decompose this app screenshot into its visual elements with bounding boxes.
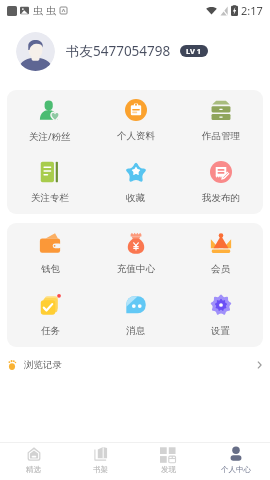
button[interactable]: 发现 [134, 443, 202, 480]
button[interactable]: 收藏 [93, 152, 178, 214]
button[interactable]: 钱包 [7, 223, 93, 285]
staticText: 发现 [161, 465, 176, 474]
staticText: 2:17 [241, 3, 263, 18]
button[interactable]: 关注/粉丝 [7, 90, 93, 152]
button[interactable]: 我发布的 [178, 152, 263, 214]
button[interactable]: 作品管理 [178, 90, 263, 152]
staticText: 浏览记录 [24, 359, 62, 371]
staticText: 任务 [41, 325, 60, 337]
button[interactable]: 充值中心 [93, 223, 178, 285]
staticText: 消息 [126, 325, 145, 337]
staticText: 关注/粉丝 [29, 130, 71, 143]
staticText: LV 1 [186, 46, 202, 56]
staticText: 收藏 [126, 192, 145, 204]
button[interactable]: 消息 [93, 285, 178, 347]
button[interactable]: 浏览记录 [0, 347, 270, 383]
staticText: 我发布的 [202, 192, 240, 204]
staticText: 书架 [93, 465, 108, 474]
staticText: 书友5477054798 [66, 42, 171, 60]
button[interactable]: 会员 [178, 223, 263, 285]
button[interactable]: 书友5477054798 [0, 20, 270, 82]
staticText: 个人中心 [221, 465, 251, 474]
staticText: 会员 [211, 263, 230, 275]
staticText: 关注专栏 [31, 192, 69, 204]
button[interactable]: 精选 [0, 443, 67, 480]
staticText: 设置 [211, 325, 230, 337]
staticText: 虫 [33, 4, 43, 17]
staticText: 钱包 [41, 263, 60, 275]
button[interactable]: 个人中心 [202, 443, 270, 480]
button[interactable]: 任务 [7, 285, 93, 347]
staticText: 充值中心 [117, 263, 155, 275]
staticText: 作品管理 [202, 130, 240, 142]
button[interactable]: 关注专栏 [7, 152, 93, 214]
button[interactable]: 书架 [67, 443, 134, 480]
staticText: 精选 [26, 465, 41, 474]
staticText: 虫 [46, 4, 56, 17]
staticText: 个人资料 [117, 130, 155, 142]
button[interactable]: 设置 [178, 285, 263, 347]
button[interactable]: 个人资料 [93, 90, 178, 152]
